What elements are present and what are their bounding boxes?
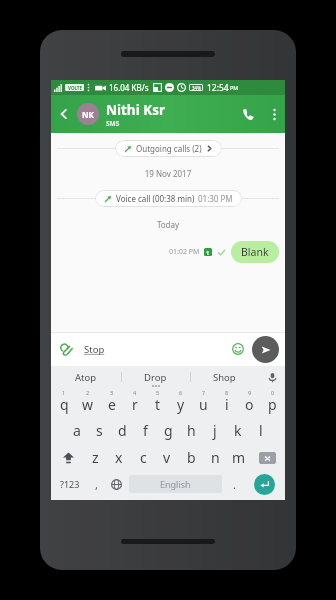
staticText: 3 xyxy=(110,389,114,396)
staticText: w xyxy=(82,395,94,414)
staticText: 5 xyxy=(156,389,160,396)
staticText: . xyxy=(233,477,236,492)
staticText: PM xyxy=(230,84,239,91)
button[interactable]: b xyxy=(179,444,203,471)
button[interactable]: Enter xyxy=(254,474,275,495)
button[interactable]: Voice call (00:38 min) xyxy=(95,190,242,207)
button[interactable]: s xyxy=(88,417,111,444)
button[interactable]: Outgoing calls (2) xyxy=(115,140,222,157)
staticText: 16.04 KB/s xyxy=(109,82,149,93)
button[interactable]: More options xyxy=(263,95,285,133)
button[interactable]: ?123 xyxy=(52,471,87,497)
button[interactable]: 4 xyxy=(123,388,146,417)
staticText: 34% xyxy=(192,85,201,91)
button[interactable]: f xyxy=(134,417,157,444)
staticText: e xyxy=(108,395,116,414)
staticText: Drop xyxy=(144,371,167,384)
staticText: 1 xyxy=(206,249,210,256)
button[interactable]: x xyxy=(107,444,131,471)
button[interactable]: Blank xyxy=(231,241,279,263)
staticText: a xyxy=(73,421,81,440)
button[interactable]: 7 xyxy=(192,388,215,417)
staticText: z xyxy=(92,448,99,467)
staticText: u xyxy=(199,395,208,414)
staticText: Nithi Ksr xyxy=(106,101,165,119)
button[interactable]: 2 xyxy=(76,388,100,417)
staticText: j xyxy=(213,421,217,440)
staticText: i xyxy=(225,395,229,414)
staticText: x xyxy=(115,448,123,467)
button[interactable]: 8 xyxy=(215,388,238,417)
staticText: q xyxy=(60,395,69,414)
button[interactable]: 5 xyxy=(146,388,169,417)
staticText: g xyxy=(164,421,173,440)
staticText: c xyxy=(140,448,147,467)
staticText: n xyxy=(211,448,220,467)
staticText: English xyxy=(160,478,191,490)
staticText: h xyxy=(187,421,196,440)
staticText: 2 xyxy=(86,389,90,396)
staticText: o xyxy=(245,395,254,414)
button[interactable]: Drop xyxy=(121,366,190,388)
staticText: 8 xyxy=(225,389,229,396)
staticText: NK xyxy=(82,109,94,120)
staticText: p xyxy=(268,395,277,414)
button[interactable]: h xyxy=(180,417,203,444)
staticText: 6 xyxy=(179,389,183,396)
button[interactable]: k xyxy=(226,417,249,444)
staticText: y xyxy=(177,395,185,414)
button[interactable]: l xyxy=(249,417,272,444)
staticText: v xyxy=(163,448,171,467)
staticText: m xyxy=(232,448,246,467)
staticText: 01:02 PM xyxy=(169,247,200,257)
button[interactable]: Attach xyxy=(57,340,75,358)
button[interactable]: Back xyxy=(51,95,77,133)
button[interactable]: Emoji xyxy=(229,340,247,358)
staticText: 4 xyxy=(133,389,137,396)
staticText: Blank xyxy=(241,245,269,259)
staticText: 9 xyxy=(248,389,252,396)
button[interactable]: Atop xyxy=(51,366,121,388)
button[interactable]: English xyxy=(129,475,222,493)
staticText: Voice call (00:38 min) xyxy=(116,193,195,204)
button[interactable]: 3 xyxy=(100,388,123,417)
button[interactable]: v xyxy=(155,444,179,471)
staticText: 1 xyxy=(62,389,66,396)
button[interactable]: Nithi Ksr xyxy=(106,101,233,128)
staticText: VOLTE xyxy=(68,85,82,91)
staticText: Today xyxy=(51,219,285,230)
staticText: s xyxy=(96,421,103,440)
button[interactable]: . xyxy=(224,471,245,497)
staticText: SMS xyxy=(106,119,120,128)
button[interactable]: 6 xyxy=(169,388,192,417)
button[interactable]: Backspace xyxy=(251,444,284,471)
staticText: d xyxy=(118,421,127,440)
button[interactable]: m xyxy=(227,444,251,471)
button[interactable]: a xyxy=(65,417,88,444)
button[interactable]: 1 xyxy=(52,388,76,417)
button[interactable]: Change language xyxy=(106,471,127,497)
staticText: 7 xyxy=(202,389,206,396)
button[interactable]: Call xyxy=(233,95,263,133)
button[interactable]: c xyxy=(131,444,155,471)
button[interactable]: j xyxy=(203,417,226,444)
button[interactable]: Stop xyxy=(84,343,229,356)
button[interactable]: Shop xyxy=(190,366,259,388)
staticText: ?123 xyxy=(60,478,80,490)
staticText: k xyxy=(234,421,242,440)
staticText: 01:30 PM xyxy=(198,193,233,204)
button[interactable]: 9 xyxy=(238,388,261,417)
button[interactable]: Voice input xyxy=(259,366,285,388)
button[interactable]: , xyxy=(87,471,106,497)
button[interactable]: z xyxy=(84,444,107,471)
button[interactable]: n xyxy=(203,444,227,471)
button[interactable]: g xyxy=(157,417,180,444)
staticText: 19 Nov 2017 xyxy=(51,168,285,179)
button[interactable]: Shift xyxy=(52,444,84,471)
staticText: f xyxy=(143,421,148,440)
button[interactable]: Send xyxy=(252,336,279,363)
button[interactable]: d xyxy=(111,417,134,444)
staticText: Atop xyxy=(75,371,97,384)
staticText: l xyxy=(259,421,263,440)
button[interactable]: 0 xyxy=(261,388,284,417)
